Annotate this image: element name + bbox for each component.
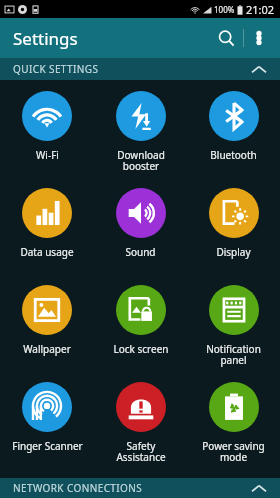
button[interactable]: Lock screen: [94, 280, 187, 377]
button[interactable]: Power saving mode: [187, 377, 280, 474]
button[interactable]: Data usage: [0, 183, 94, 280]
staticText: Safety Assistance: [116, 439, 166, 464]
staticText: 100%: [214, 4, 235, 15]
staticText: Wallpaper: [23, 342, 71, 356]
staticText: Lock screen: [113, 342, 169, 356]
button[interactable]: Search: [209, 21, 243, 55]
staticText: QUICK SETTINGS: [13, 62, 99, 76]
staticText: 21:02: [246, 2, 275, 17]
staticText: Notification panel: [206, 342, 261, 367]
staticText: Bluetooth: [210, 148, 257, 162]
button[interactable]: Finger Scanner: [0, 377, 94, 474]
staticText: Finger Scanner: [12, 439, 83, 453]
staticText: NETWORK CONNECTIONS: [13, 481, 143, 495]
staticText: Settings: [13, 27, 78, 50]
button[interactable]: Download booster: [94, 86, 187, 183]
staticText: Display: [216, 245, 251, 259]
button[interactable]: Bluetooth: [187, 86, 280, 183]
staticText: Download booster: [117, 148, 165, 173]
staticText: Data usage: [20, 245, 74, 259]
staticText: Wi-Fi: [36, 148, 59, 162]
button[interactable]: Notification panel: [187, 280, 280, 377]
button[interactable]: Display: [187, 183, 280, 280]
button[interactable]: More options: [244, 23, 274, 53]
staticText: Sound: [125, 245, 156, 259]
button[interactable]: NETWORK CONNECTIONS: [0, 478, 280, 498]
button[interactable]: Sound: [94, 183, 187, 280]
button[interactable]: Wi-Fi: [0, 86, 94, 183]
button[interactable]: Safety Assistance: [94, 377, 187, 474]
button[interactable]: Wallpaper: [0, 280, 94, 377]
button[interactable]: QUICK SETTINGS: [0, 58, 280, 80]
staticText: Power saving mode: [202, 439, 265, 464]
